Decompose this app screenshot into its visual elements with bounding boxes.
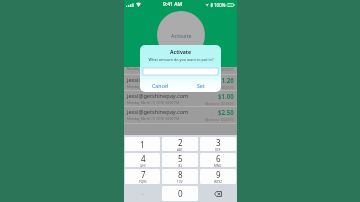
staticText: Monday, March 19, 2018, 04:50 PM [127, 117, 180, 121]
staticText: 9 [216, 169, 221, 180]
button[interactable]: 3 [200, 137, 236, 151]
staticText: 9:41 AM [163, 1, 183, 8]
staticText: ABC [177, 148, 183, 151]
button[interactable]: Set [180, 79, 221, 92]
staticText: jessi@getshinepay.com [127, 108, 189, 116]
staticText: 3 [216, 137, 221, 148]
staticText: Cancel [152, 82, 169, 89]
button[interactable]: Cancel [140, 79, 180, 92]
staticText: TUV [177, 180, 183, 184]
staticText: DEF [215, 148, 221, 151]
button[interactable]: Delete [199, 185, 237, 202]
button[interactable]: 0 [162, 186, 198, 201]
button[interactable]: 2 [162, 137, 198, 151]
button[interactable]: 8 [162, 169, 198, 184]
button[interactable]: 5 [162, 153, 198, 167]
button[interactable]: 4 [125, 153, 160, 167]
button[interactable]: Amount input [143, 68, 218, 75]
staticText: JKL [178, 164, 183, 167]
staticText: 100% [214, 2, 226, 8]
button[interactable]: 9 [200, 169, 236, 184]
button[interactable]: 6 [200, 153, 236, 167]
staticText: 7 [141, 169, 146, 180]
button[interactable]: Activate [157, 11, 205, 59]
staticText: Machine: 002691 [205, 67, 234, 72]
staticText: Monday, March 19, 2018, 04:50 PM [127, 85, 180, 89]
staticText: Monday, March 19, 2018, 04:50 PM [127, 101, 180, 105]
staticText: 8 [178, 169, 183, 180]
staticText: MNO [214, 164, 222, 167]
button[interactable]: 1 [125, 137, 160, 151]
staticText: $1.26 [218, 76, 234, 84]
staticText: What amount do you want to put in? [148, 57, 214, 62]
staticText: GHI [140, 164, 146, 167]
staticText: Activate [171, 32, 192, 39]
staticText: 1 [140, 139, 145, 150]
staticText: WXYZ [214, 180, 222, 184]
staticText: Machine: 002691 [205, 117, 234, 122]
staticText: PQRS [139, 180, 147, 184]
staticText: Set [197, 82, 205, 89]
staticText: 2 [178, 137, 183, 148]
staticText: jessi@getshinepay.com [127, 92, 189, 100]
staticText: . [142, 190, 144, 197]
button[interactable]: 7 [125, 169, 160, 184]
staticText: 5 [178, 153, 183, 164]
staticText: 0 [178, 188, 183, 199]
staticText: Machine: 002691 [205, 101, 234, 106]
staticText: $1.00 [218, 92, 234, 100]
staticText: Activate [170, 49, 192, 56]
staticText: jessi@getshinepay.com [127, 76, 189, 84]
staticText: Machine: 002691 [205, 85, 234, 90]
staticText: Monday, March 19, 2018, 04:50 PM [127, 67, 180, 71]
staticText: $2.50 [218, 108, 234, 116]
staticText: 4 [141, 153, 146, 164]
staticText: 6 [216, 153, 221, 164]
